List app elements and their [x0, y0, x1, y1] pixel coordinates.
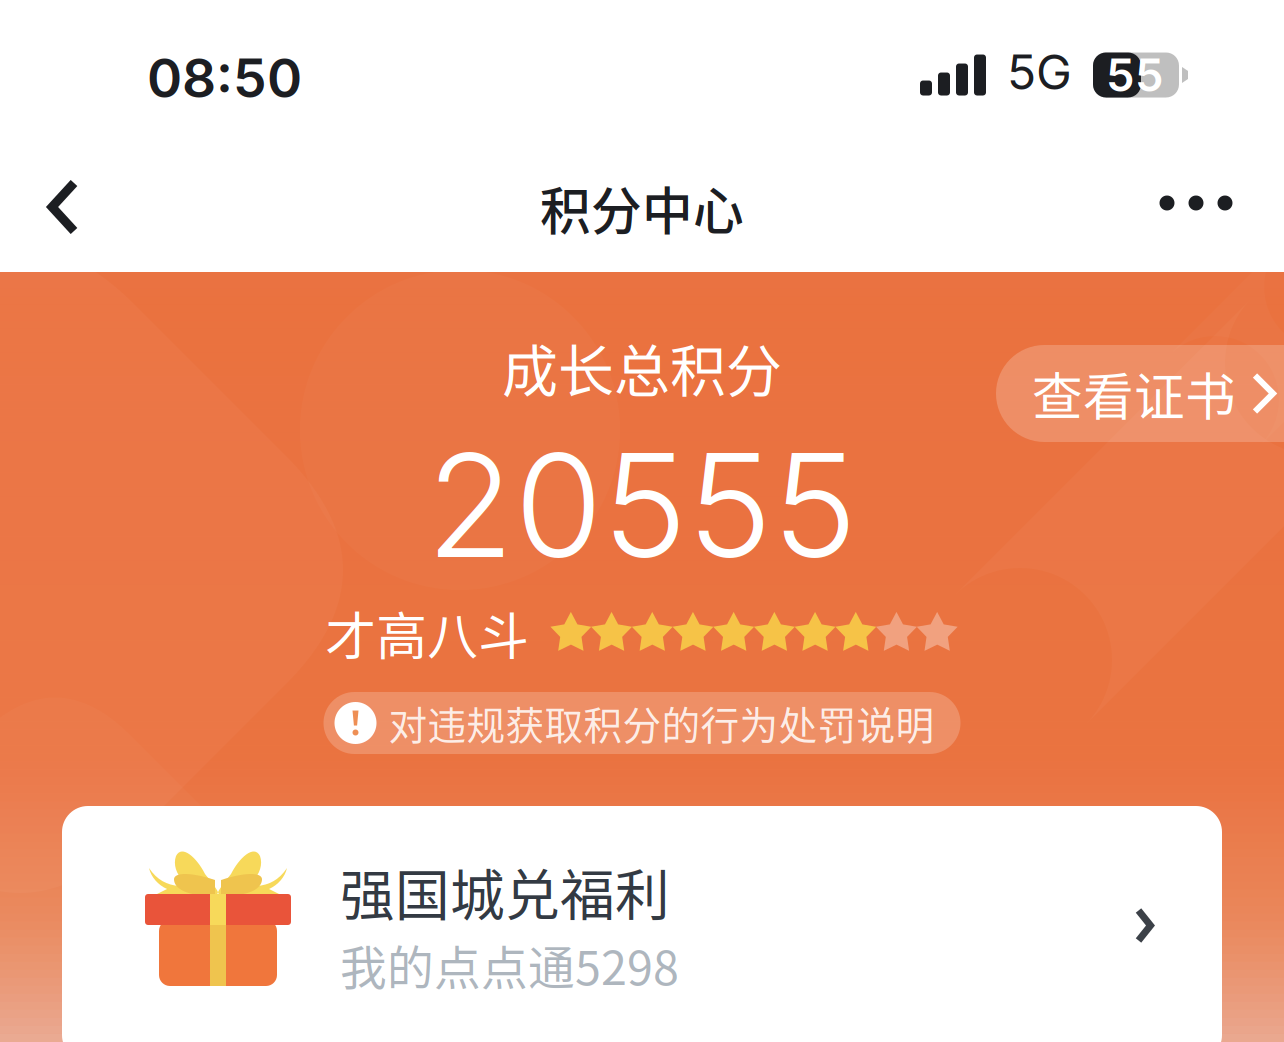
staticText: 才高八斗: [325, 596, 529, 670]
button[interactable]: More: [1131, 148, 1261, 258]
staticText: 20555: [426, 419, 857, 591]
staticText: 查看证书: [1032, 357, 1236, 430]
staticText: 强国城兑福利: [340, 852, 670, 931]
staticText: 我的点点通5298: [340, 931, 679, 998]
staticText: 5G: [1007, 43, 1072, 101]
button[interactable]: Back: [11, 152, 115, 262]
staticText: 对违规获取积分的行为处罚说明: [388, 695, 934, 751]
staticText: 08:50: [147, 46, 302, 110]
button[interactable]: 查看证书: [996, 345, 1284, 442]
staticText: 55: [1106, 48, 1164, 102]
staticText: 成长总积分: [502, 326, 782, 408]
button[interactable]: 对违规获取积分的行为处罚说明: [323, 692, 960, 754]
button[interactable]: 强国城兑福利: [62, 806, 1222, 1042]
staticText: 积分中心: [540, 171, 744, 245]
